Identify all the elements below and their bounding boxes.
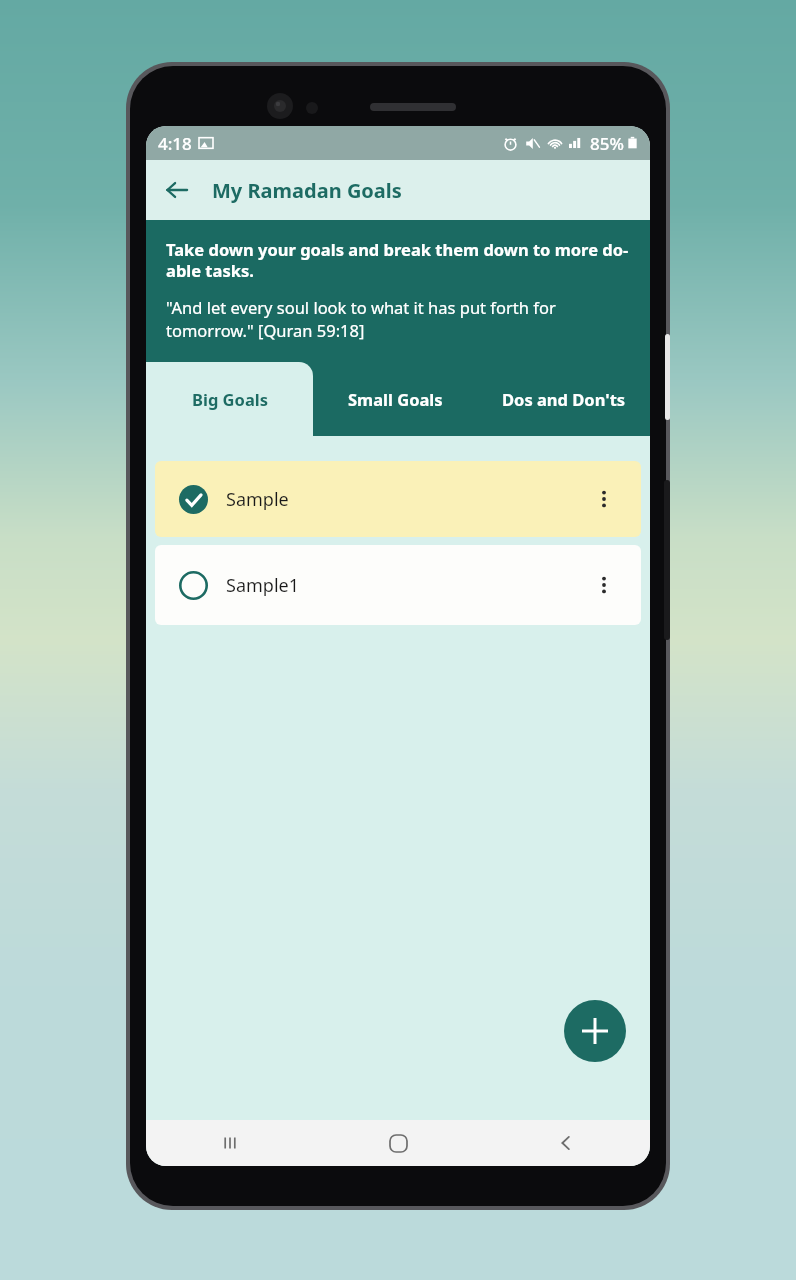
button[interactable]: Back (154, 167, 200, 213)
button[interactable]: Add goal (564, 1000, 626, 1062)
button[interactable]: Sample (155, 461, 641, 537)
staticText: 85% (590, 132, 624, 155)
button[interactable]: Recent apps (146, 1120, 314, 1166)
button[interactable]: Big Goals (146, 362, 313, 436)
button[interactable]: Back (482, 1120, 650, 1166)
button[interactable]: More options (587, 568, 621, 602)
staticText: Take down your goals and break them down… (166, 238, 630, 282)
staticText: Small Goals (348, 388, 443, 410)
staticText: "And let every soul look to what it has … (166, 296, 630, 342)
staticText: My Ramadan Goals (212, 177, 402, 204)
staticText: Big Goals (192, 388, 268, 410)
button[interactable]: Home (314, 1120, 482, 1166)
staticText: Dos and Don'ts (502, 388, 626, 410)
button[interactable]: Dos and Don'ts (477, 362, 650, 436)
button[interactable]: More options (587, 482, 621, 516)
staticText: Sample1 (226, 573, 299, 598)
button[interactable]: Sample1 (155, 545, 641, 625)
staticText: 4:18 (158, 132, 192, 155)
staticText: Sample (226, 487, 289, 512)
button[interactable]: Small Goals (313, 362, 477, 436)
